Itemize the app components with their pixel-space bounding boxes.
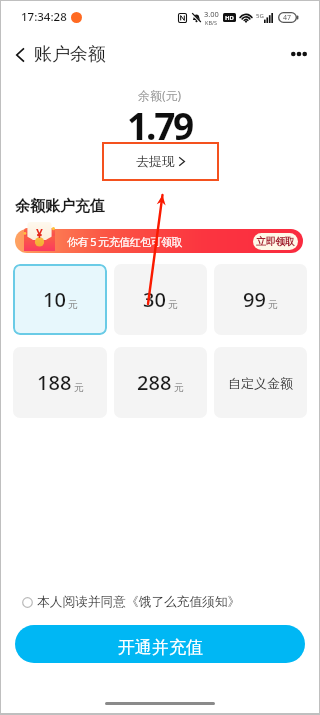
button[interactable]: Back: [1, 43, 116, 66]
button[interactable]: 立即领取: [253, 233, 298, 250]
staticText: 5G: [256, 12, 264, 20]
staticText: 3.00: [204, 9, 219, 19]
staticText: KB/S: [205, 19, 218, 26]
staticText: 元: [74, 381, 84, 394]
staticText: 余额(元): [138, 87, 182, 103]
staticText: 余额账户充值: [15, 197, 105, 216]
staticText: HD: [225, 14, 234, 22]
button[interactable]: 10: [13, 264, 107, 335]
staticText: 47: [283, 13, 292, 23]
button[interactable]: 188: [13, 347, 107, 418]
staticText: 你有 5 元充值红包可领取: [67, 234, 182, 249]
staticText: 立即领取: [256, 235, 295, 248]
staticText: 账户余额: [34, 43, 106, 66]
staticText: 自定义金额: [228, 375, 293, 391]
button[interactable]: 去提现: [126, 149, 195, 173]
staticText: 本人阅读并同意: [37, 594, 126, 610]
staticText: 元: [68, 298, 78, 311]
button[interactable]: 30: [114, 264, 207, 335]
staticText: 99: [243, 286, 266, 313]
button[interactable]: 开通并充值: [15, 625, 305, 663]
button[interactable]: 自定义金额: [214, 347, 307, 418]
staticText: 10: [43, 286, 66, 313]
staticText: 188: [37, 369, 72, 396]
staticText: 开通并充值: [118, 637, 203, 658]
staticText: 元: [174, 381, 184, 394]
button[interactable]: 288: [114, 347, 207, 418]
button[interactable]: 你有 5 元充值红包可领取: [15, 229, 303, 253]
staticText: 30: [143, 286, 166, 313]
staticText: 元: [168, 298, 178, 311]
staticText: 17:34:28: [21, 9, 67, 25]
button[interactable]: 99: [214, 264, 307, 335]
button[interactable]: 本人阅读并同意: [22, 594, 319, 610]
staticText: 288: [137, 369, 172, 396]
staticText: 1.79: [127, 100, 193, 150]
button[interactable]: More options: [279, 51, 319, 57]
staticText: 元: [268, 298, 278, 311]
staticText: 去提现: [136, 153, 175, 169]
staticText: ¥: [36, 225, 43, 241]
staticText: 《饿了么充值须知》: [126, 594, 241, 610]
other: Back: [16, 48, 24, 62]
